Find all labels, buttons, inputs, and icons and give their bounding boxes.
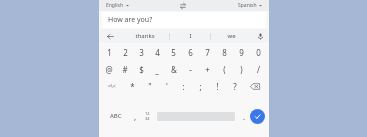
staticText: , xyxy=(134,111,137,122)
button[interactable]: Swap languages xyxy=(178,1,188,11)
button[interactable]: @ xyxy=(101,61,117,78)
button[interactable]: ' xyxy=(158,78,175,95)
staticText: 6 xyxy=(188,47,193,58)
staticText: " xyxy=(148,81,152,92)
button[interactable]: , xyxy=(129,95,141,137)
button[interactable]: ; xyxy=(192,78,209,95)
staticText: ; xyxy=(199,81,202,92)
button[interactable]: ( xyxy=(216,61,233,78)
staticText: # xyxy=(122,64,128,75)
staticText: + xyxy=(205,64,210,75)
button[interactable]: 4 xyxy=(149,44,165,61)
button[interactable]: : xyxy=(175,78,192,95)
staticText: 5 xyxy=(171,47,176,58)
button[interactable]: we xyxy=(211,29,251,43)
staticText: 34 xyxy=(145,116,150,121)
button[interactable]: ! xyxy=(209,78,226,95)
staticText: 1 xyxy=(107,47,112,58)
button[interactable]: 5 xyxy=(165,44,182,61)
button[interactable]: I xyxy=(170,29,210,43)
staticText: : xyxy=(182,81,185,92)
button[interactable]: - xyxy=(182,61,199,78)
button[interactable]: . xyxy=(238,95,250,137)
staticText: Spanish xyxy=(238,2,257,9)
button[interactable]: Voice input xyxy=(251,29,269,43)
staticText: - xyxy=(189,64,192,75)
button[interactable]: / xyxy=(250,61,267,78)
button[interactable]: thanks xyxy=(121,29,169,43)
button[interactable]: & xyxy=(165,61,182,78)
staticText: English xyxy=(106,2,124,9)
staticText: ABC xyxy=(110,112,122,120)
staticText: 3 xyxy=(139,47,144,58)
staticText: 12 xyxy=(145,111,150,116)
staticText: & xyxy=(171,64,177,75)
button[interactable]: How are you? xyxy=(102,12,266,28)
staticText: 0 xyxy=(256,47,261,58)
staticText: How are you? xyxy=(108,15,153,25)
button[interactable]: " xyxy=(141,78,158,95)
button[interactable]: =\< xyxy=(101,78,123,95)
button[interactable]: + xyxy=(199,61,216,78)
staticText: ' xyxy=(166,81,168,92)
staticText: @ xyxy=(105,64,113,75)
staticText: $ xyxy=(139,64,144,75)
button[interactable]: 2 xyxy=(117,44,133,61)
staticText: * xyxy=(130,81,135,92)
button[interactable]: 8 xyxy=(216,44,233,61)
staticText: ( xyxy=(223,64,226,75)
button[interactable]: 7 xyxy=(199,44,216,61)
staticText: / xyxy=(257,64,260,75)
staticText: 7 xyxy=(205,47,210,58)
button[interactable]: ? xyxy=(226,78,243,95)
staticText: ! xyxy=(216,81,219,92)
staticText: 8 xyxy=(222,47,227,58)
button[interactable]: English xyxy=(104,0,131,11)
staticText: . xyxy=(243,111,246,122)
button[interactable]: # xyxy=(117,61,133,78)
staticText: 2 xyxy=(123,47,128,58)
button[interactable]: ) xyxy=(233,61,250,78)
staticText: I xyxy=(189,32,192,40)
staticText: 9 xyxy=(239,47,244,58)
button[interactable]: 9 xyxy=(233,44,250,61)
button[interactable]: Spanish xyxy=(236,0,264,11)
staticText: 4 xyxy=(155,47,160,58)
staticText: =\< xyxy=(108,83,116,90)
button[interactable]: 3 xyxy=(133,44,149,61)
button[interactable]: Back xyxy=(99,29,121,43)
button[interactable]: Numbers xyxy=(141,95,154,137)
button[interactable]: Done xyxy=(250,109,265,124)
staticText: ) xyxy=(240,64,243,75)
button[interactable]: _ xyxy=(149,61,165,78)
button[interactable]: * xyxy=(123,78,141,95)
staticText: ? xyxy=(233,81,237,92)
button[interactable]: 6 xyxy=(182,44,199,61)
staticText: _ xyxy=(155,64,159,75)
button[interactable]: 0 xyxy=(250,44,267,61)
button[interactable]: ABC xyxy=(103,95,129,137)
button[interactable]: 1 xyxy=(101,44,117,61)
staticText: we xyxy=(227,32,236,40)
button[interactable]: Backspace xyxy=(243,78,267,95)
staticText: thanks xyxy=(135,32,155,40)
button[interactable]: $ xyxy=(133,61,149,78)
